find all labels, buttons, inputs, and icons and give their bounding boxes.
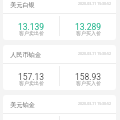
staticText: 人民币铂金 xyxy=(10,51,41,59)
button[interactable]: 美元白银 xyxy=(3,0,116,40)
staticText: 美元白银 xyxy=(10,1,35,9)
staticText: 2020-03-11 15:30:52 xyxy=(78,1,112,6)
staticText: 客户卖出价 xyxy=(19,80,44,86)
staticText: 2020-03-11 15:30:52 xyxy=(78,51,112,56)
staticText: 13.289 xyxy=(75,22,102,32)
staticText: 客户买入价 xyxy=(76,80,101,86)
button[interactable]: 美元铂金 xyxy=(3,95,116,120)
staticText: 157.13 xyxy=(18,72,45,82)
staticText: 客户买入价 xyxy=(76,30,101,36)
button[interactable]: 人民币铂金 xyxy=(3,45,116,90)
staticText: 美元铂金 xyxy=(10,101,35,109)
staticText: 客户卖出价 xyxy=(19,30,44,36)
staticText: 13.139 xyxy=(18,22,45,32)
staticText: 158.93 xyxy=(75,72,102,82)
staticText: 2020-03-11 15:30:52 xyxy=(78,101,112,106)
